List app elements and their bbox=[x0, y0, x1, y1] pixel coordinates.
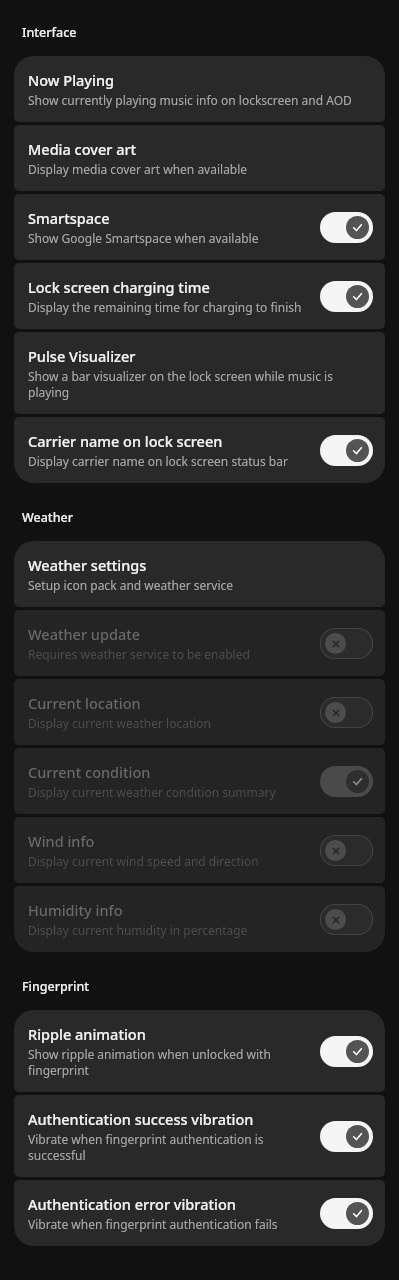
button[interactable]: Toggle on bbox=[320, 212, 373, 243]
button[interactable]: Authentication error vibration bbox=[14, 1180, 385, 1246]
button[interactable]: Carrier name on lock screen bbox=[14, 417, 385, 483]
button[interactable]: Smartspace bbox=[14, 194, 385, 260]
button[interactable]: Authentication success vibration bbox=[14, 1095, 385, 1177]
staticText: Interface bbox=[22, 24, 77, 41]
staticText: Display carrier name on lock screen stat… bbox=[28, 453, 288, 469]
staticText: Show a bar visualizer on the lock screen… bbox=[28, 368, 365, 400]
button[interactable]: Toggle off bbox=[320, 835, 373, 866]
staticText: Current location bbox=[28, 693, 141, 713]
staticText: Display media cover art when available bbox=[28, 161, 248, 177]
button[interactable]: Ripple animation bbox=[14, 1010, 385, 1092]
staticText: Setup icon pack and weather service bbox=[28, 577, 234, 593]
staticText: Authentication success vibration bbox=[28, 1109, 254, 1129]
staticText: Wind info bbox=[28, 831, 95, 851]
button[interactable]: Toggle on bbox=[320, 1198, 373, 1229]
button[interactable]: Weather update bbox=[14, 610, 385, 676]
staticText: Vibrate when fingerprint authentication … bbox=[28, 1131, 312, 1163]
staticText: Smartspace bbox=[28, 208, 110, 228]
staticText: Show ripple animation when unlocked with… bbox=[28, 1046, 312, 1078]
button[interactable]: Toggle off bbox=[320, 697, 373, 728]
button[interactable]: Lock screen charging time bbox=[14, 263, 385, 329]
button[interactable]: Current location bbox=[14, 679, 385, 745]
button[interactable]: Toggle on bbox=[320, 281, 373, 312]
staticText: Pulse Visualizer bbox=[28, 346, 136, 366]
button[interactable]: Toggle on bbox=[320, 766, 373, 797]
staticText: Weather settings bbox=[28, 555, 147, 575]
button[interactable]: Now Playing bbox=[14, 56, 385, 122]
button[interactable]: Wind info bbox=[14, 817, 385, 883]
staticText: Display current weather condition summar… bbox=[28, 784, 276, 800]
button[interactable]: Toggle on bbox=[320, 1036, 373, 1067]
staticText: Current condition bbox=[28, 762, 151, 782]
staticText: Display the remaining time for charging … bbox=[28, 299, 302, 315]
button[interactable]: Pulse Visualizer bbox=[14, 332, 385, 414]
staticText: Requires weather service to be enabled bbox=[28, 646, 250, 662]
staticText: Lock screen charging time bbox=[28, 277, 210, 297]
staticText: Humidity info bbox=[28, 900, 123, 920]
button[interactable]: Media cover art bbox=[14, 125, 385, 191]
staticText: Ripple animation bbox=[28, 1024, 146, 1044]
staticText: Weather bbox=[22, 509, 73, 526]
button[interactable]: Toggle off bbox=[320, 628, 373, 659]
button[interactable]: Toggle on bbox=[320, 435, 373, 466]
staticText: Authentication error vibration bbox=[28, 1194, 236, 1214]
staticText: Show Google Smartspace when available bbox=[28, 230, 259, 246]
staticText: Display current weather location bbox=[28, 715, 212, 731]
button[interactable]: Weather settings bbox=[14, 541, 385, 607]
button[interactable]: Toggle off bbox=[320, 904, 373, 935]
staticText: Display current wind speed and direction bbox=[28, 853, 259, 869]
staticText: Fingerprint bbox=[22, 978, 90, 995]
button[interactable]: Toggle on bbox=[320, 1121, 373, 1152]
staticText: Display current humidity in percentage bbox=[28, 922, 248, 938]
staticText: Vibrate when fingerprint authentication … bbox=[28, 1216, 278, 1232]
button[interactable]: Humidity info bbox=[14, 886, 385, 952]
staticText: Media cover art bbox=[28, 139, 137, 159]
staticText: Show currently playing music info on loc… bbox=[28, 92, 352, 108]
staticText: Carrier name on lock screen bbox=[28, 431, 223, 451]
staticText: Now Playing bbox=[28, 70, 114, 90]
staticText: Weather update bbox=[28, 624, 141, 644]
button[interactable]: Current condition bbox=[14, 748, 385, 814]
